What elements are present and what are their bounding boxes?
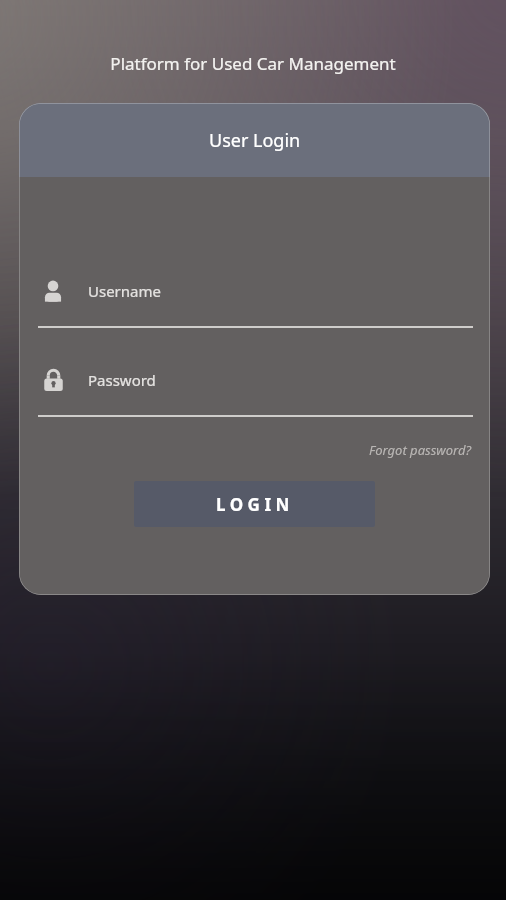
button[interactable]: Username — [38, 274, 473, 328]
staticText: LOGIN — [216, 493, 294, 516]
other: Username — [40, 278, 66, 304]
staticText: Platform for Used Car Management — [0, 52, 506, 75]
staticText: User Login — [209, 128, 301, 153]
button[interactable]: Forgot password? — [367, 439, 473, 461]
other: Password — [41, 368, 66, 393]
staticText: Password — [88, 370, 156, 390]
button[interactable]: LOGIN — [134, 481, 375, 527]
button[interactable]: Password — [38, 363, 473, 417]
staticText: Username — [88, 281, 161, 301]
